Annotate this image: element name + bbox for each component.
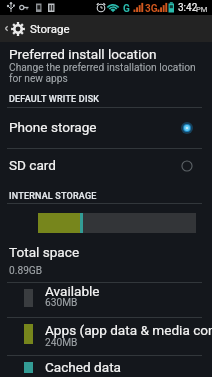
staticText: DEFAULT WRITE DISK	[9, 94, 100, 105]
staticText: 630MB	[45, 297, 78, 309]
staticText: 3G	[145, 3, 158, 15]
button[interactable]: Available	[0, 282, 212, 317]
staticText: Storage	[30, 22, 70, 35]
staticText: Available	[45, 283, 100, 299]
other: Navigate up	[3, 25, 10, 32]
staticText: Preferred install location	[9, 46, 157, 62]
staticText: PM	[196, 5, 208, 14]
staticText: 240MB	[45, 337, 78, 349]
staticText: G	[123, 3, 130, 15]
staticText: Change the preferred installation locati…	[9, 62, 196, 74]
staticText: Phone storage	[9, 119, 97, 135]
staticText: for new apps	[9, 73, 68, 85]
staticText: Total space	[9, 244, 80, 260]
staticText: SD card	[9, 157, 57, 173]
button[interactable]: Total space	[0, 243, 212, 278]
button[interactable]: Apps (app data & media content)	[0, 317, 212, 355]
staticText: Apps (app data & media content)	[45, 322, 212, 338]
staticText: Cached data	[45, 359, 121, 375]
button[interactable]: Navigate up	[0, 15, 212, 42]
button[interactable]: SD card	[0, 148, 212, 185]
staticText: INTERNAL STORAGE	[9, 191, 97, 202]
staticText: 0.89GB	[9, 265, 43, 277]
button[interactable]: Cached data	[0, 355, 212, 377]
button[interactable]: Phone storage	[0, 107, 212, 147]
staticText: 3:42	[178, 2, 198, 14]
